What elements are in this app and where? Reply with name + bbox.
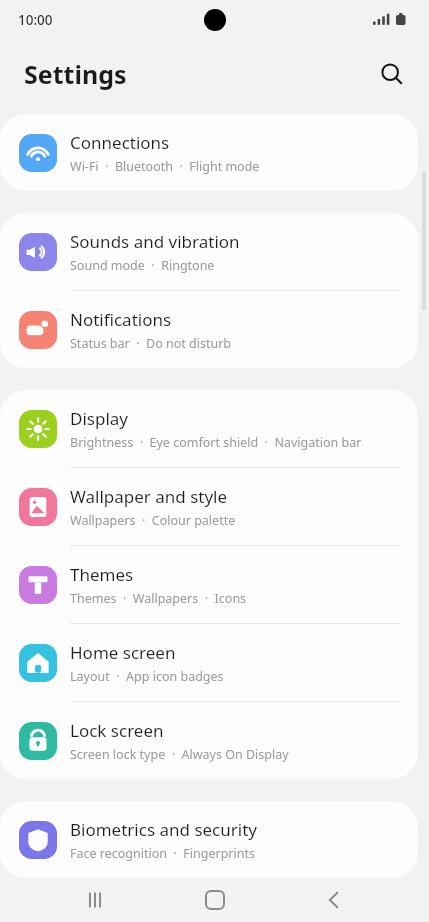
staticText: Face recognition · Fingerprints (70, 845, 255, 862)
button[interactable]: Wallpaper and style (0, 468, 418, 545)
button[interactable]: Display (0, 390, 418, 467)
staticText: Connections (70, 131, 170, 154)
staticText: Wi-Fi · Bluetooth · Flight mode (70, 158, 260, 175)
staticText: Sounds and vibration (70, 230, 240, 253)
staticText: Notifications (70, 308, 172, 331)
button[interactable]: Sounds and vibration (0, 213, 418, 290)
staticText: Sound mode · Ringtone (70, 257, 215, 274)
button[interactable]: Connections (0, 114, 418, 191)
button[interactable]: Notifications (0, 291, 418, 368)
staticText: Status bar · Do not disturb (70, 335, 232, 352)
staticText: Wallpapers · Colour palette (70, 512, 236, 529)
staticText: Biometrics and security (70, 818, 257, 841)
staticText: Display (70, 407, 128, 430)
staticText: Screen lock type · Always On Display (70, 746, 289, 763)
staticText: 10:00 (18, 11, 53, 29)
staticText: Settings (24, 57, 127, 91)
staticText: Layout · App icon badges (70, 668, 224, 685)
staticText: Home screen (70, 641, 176, 664)
staticText: Themes (70, 563, 134, 586)
button[interactable]: Back (311, 878, 357, 922)
button[interactable]: Themes (0, 546, 418, 623)
button[interactable]: Biometrics and security (0, 801, 418, 878)
staticText: Wallpaper and style (70, 485, 228, 508)
staticText: Lock screen (70, 719, 164, 742)
staticText: Brightness · Eye comfort shield · Naviga… (70, 434, 362, 451)
button[interactable]: Home screen (0, 624, 418, 701)
button[interactable]: Search (370, 52, 414, 96)
button[interactable]: Recent apps (72, 878, 118, 922)
staticText: Themes · Wallpapers · Icons (70, 590, 247, 607)
button[interactable]: Lock screen (0, 702, 418, 779)
button[interactable]: Home (192, 878, 238, 922)
